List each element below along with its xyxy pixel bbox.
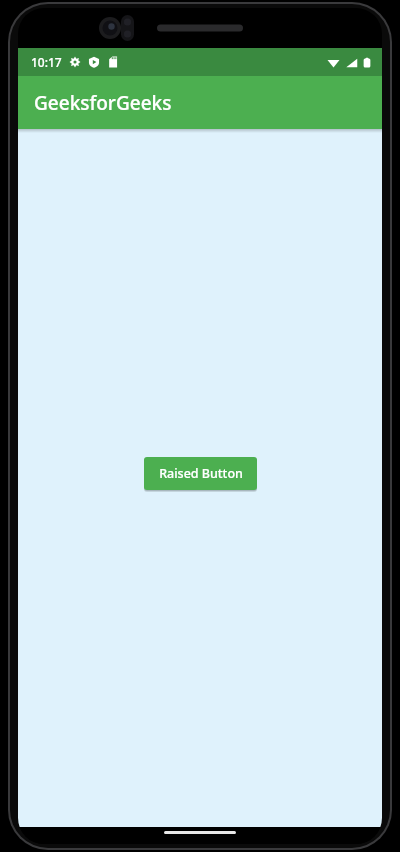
staticText: Raised Button xyxy=(159,465,243,482)
staticText: GeeksforGeeks xyxy=(34,90,172,116)
staticText: 10:17 xyxy=(31,54,62,70)
button[interactable]: Raised Button xyxy=(144,457,257,490)
